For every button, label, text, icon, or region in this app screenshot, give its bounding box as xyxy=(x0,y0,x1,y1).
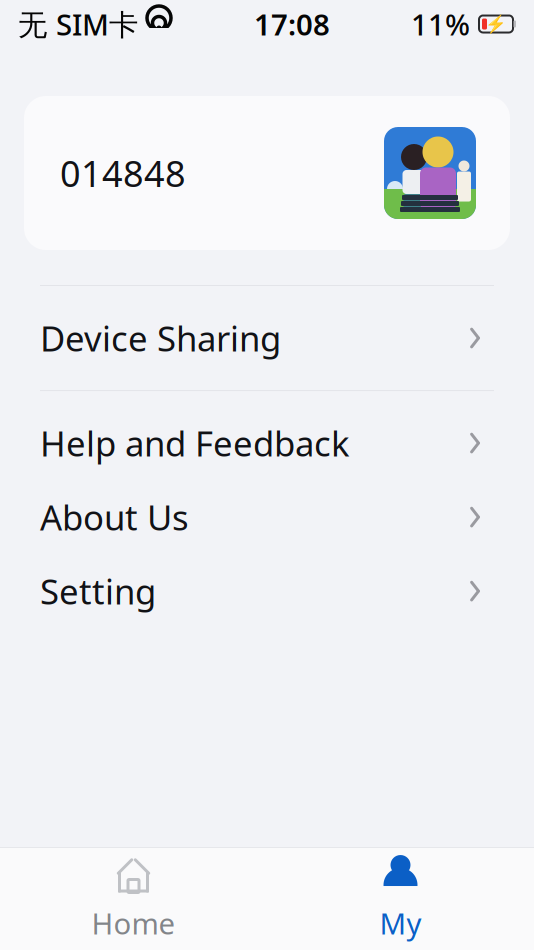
staticText: Setting xyxy=(40,568,156,614)
staticText: 17:08 xyxy=(254,4,330,43)
staticText: Help and Feedback xyxy=(40,420,350,466)
button[interactable]: 014848 xyxy=(24,96,510,250)
staticText: About Us xyxy=(40,494,189,540)
staticText: Device Sharing xyxy=(40,315,281,361)
staticText: 11% xyxy=(411,4,470,43)
staticText: 014848 xyxy=(60,149,186,197)
staticText: Home xyxy=(91,903,175,942)
staticText: ⚡ xyxy=(485,14,507,34)
staticText: 无 SIM卡 xyxy=(18,4,138,43)
button[interactable]: Home xyxy=(0,848,267,950)
staticText: My xyxy=(379,903,421,942)
button[interactable]: Setting xyxy=(0,554,534,628)
button[interactable]: Help and Feedback xyxy=(0,391,534,480)
button[interactable]: Device Sharing xyxy=(0,286,534,390)
button[interactable]: About Us xyxy=(0,480,534,554)
button[interactable]: My xyxy=(267,848,534,950)
